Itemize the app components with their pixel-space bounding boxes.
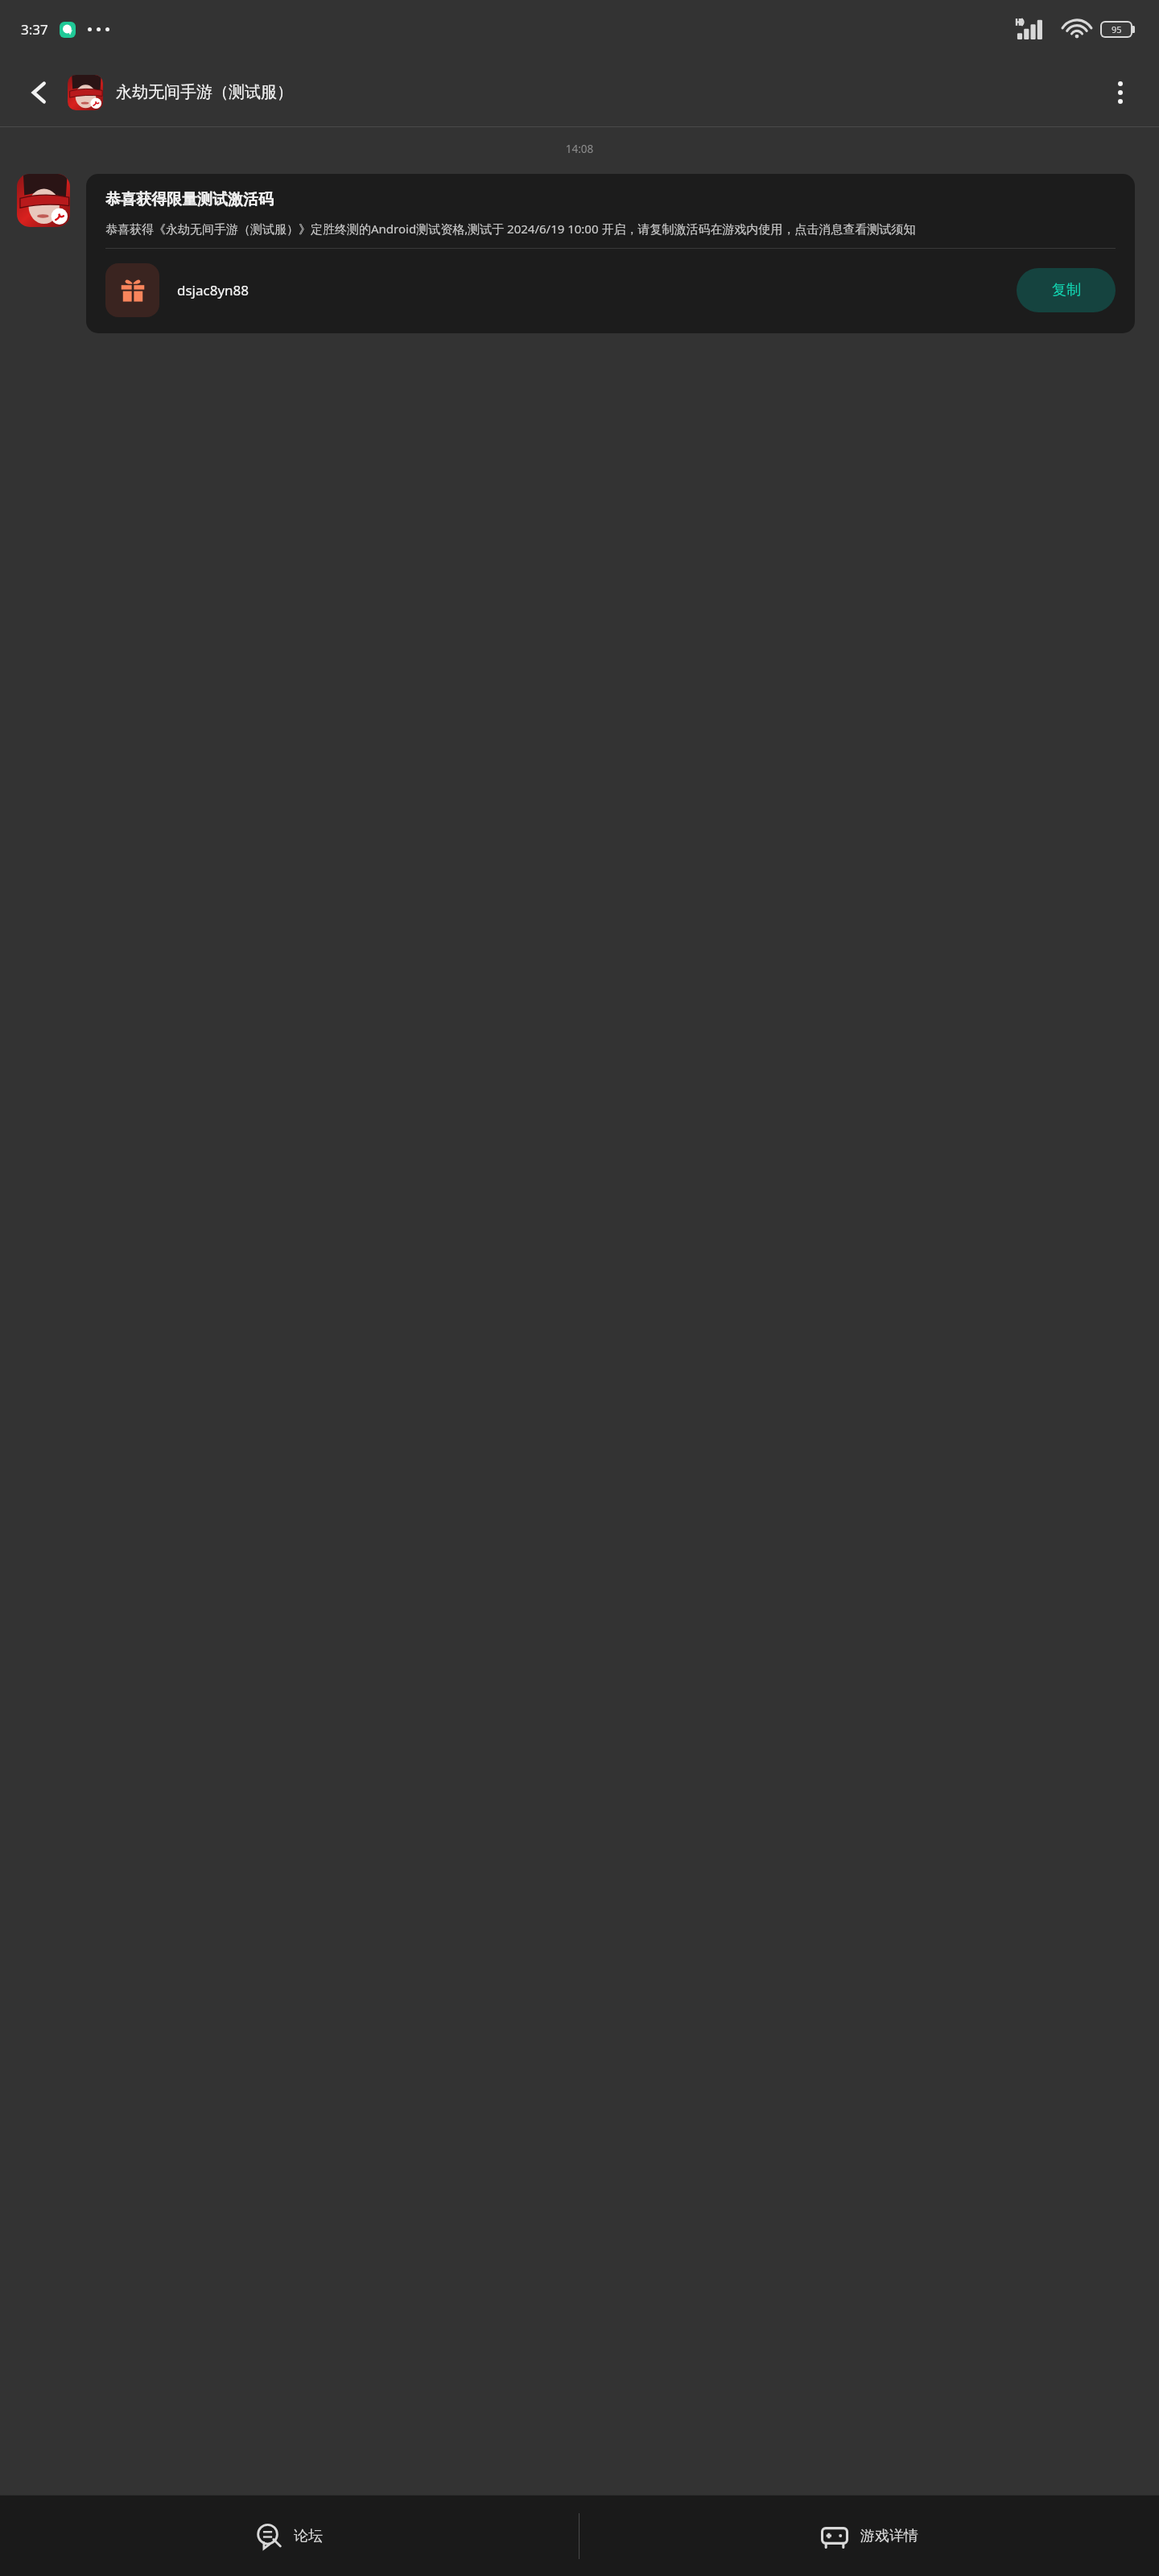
button[interactable]: 游戏详情 [579, 2495, 1159, 2576]
staticText: 恭喜获得《永劫无间手游（测试服）》定胜终测的Android测试资格,测试于 20… [105, 221, 916, 237]
staticText: 论坛 [294, 2527, 323, 2545]
button[interactable]: Back [16, 69, 63, 116]
button[interactable]: 论坛 [0, 2495, 579, 2576]
button[interactable]: More options [1098, 70, 1143, 115]
staticText: 3:37 [21, 20, 48, 39]
staticText: 恭喜获得限量测试激活码 [105, 190, 274, 209]
staticText: 永劫无间手游（测试服） [116, 82, 293, 102]
staticText: dsjac8yn88 [177, 281, 250, 299]
staticText: 14:08 [0, 142, 1159, 156]
button[interactable]: 复制 [1017, 268, 1116, 312]
staticText: 游戏详情 [860, 2527, 918, 2545]
staticText: 95 [1112, 23, 1122, 35]
button[interactable]: 恭喜获得限量测试激活码 [86, 174, 1135, 333]
staticText: 复制 [1052, 281, 1081, 299]
